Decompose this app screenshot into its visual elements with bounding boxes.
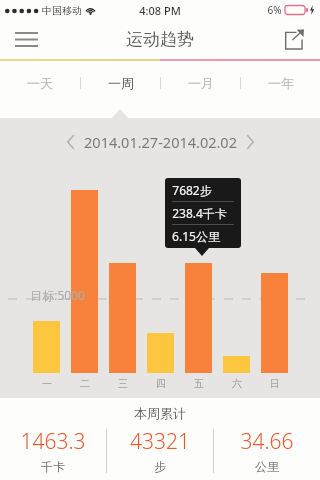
staticText: 日 xyxy=(270,377,280,390)
staticText: 运动趋势 xyxy=(126,29,194,50)
staticText: 千卡 xyxy=(41,459,65,474)
button[interactable]: Previous week xyxy=(58,129,84,155)
staticText: 一年 xyxy=(268,75,294,91)
staticText: 6.15公里 xyxy=(172,228,220,244)
staticText: 一天 xyxy=(27,75,53,91)
button[interactable]: 一月 xyxy=(161,61,240,105)
button[interactable]: 一年 xyxy=(241,61,320,105)
staticText: 二 xyxy=(80,377,90,390)
staticText: 中国移动 xyxy=(42,4,82,17)
staticText: 一 xyxy=(42,377,52,390)
button[interactable]: Share xyxy=(274,20,314,59)
button[interactable]: Menu xyxy=(6,20,46,59)
staticText: 4:08 PM xyxy=(139,3,181,18)
button[interactable]: 43321 xyxy=(107,427,213,474)
staticText: 目标:5000 xyxy=(30,287,85,303)
staticText: 2014.01.27-2014.02.02 xyxy=(84,132,237,152)
staticText: 六 xyxy=(232,377,242,390)
staticText: 五 xyxy=(194,377,204,390)
staticText: 6% xyxy=(267,3,282,17)
staticText: 本周累计 xyxy=(134,405,186,421)
staticText: 43321 xyxy=(130,427,190,456)
staticText: 一月 xyxy=(188,75,214,91)
button[interactable]: 34.66 xyxy=(214,427,320,474)
staticText: 一周 xyxy=(108,75,134,91)
button[interactable]: 1463.3 xyxy=(0,427,106,474)
button[interactable]: Next week xyxy=(237,129,263,155)
button[interactable]: 一周 xyxy=(81,61,160,105)
staticText: 公里 xyxy=(255,459,279,474)
staticText: 34.66 xyxy=(240,427,294,456)
staticText: 四 xyxy=(156,377,166,390)
staticText: 1463.3 xyxy=(20,427,86,456)
staticText: 步 xyxy=(154,459,166,474)
button[interactable]: 一天 xyxy=(0,61,80,105)
staticText: 三 xyxy=(118,377,128,390)
staticText: 238.4千卡 xyxy=(172,205,227,221)
staticText: 7682步 xyxy=(172,182,212,198)
